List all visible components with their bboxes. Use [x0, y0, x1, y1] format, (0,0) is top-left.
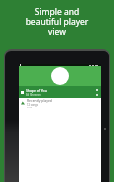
button[interactable]: More options [96, 89, 98, 96]
staticText: Simple and beautiful player view [0, 6, 114, 37]
staticText: 2:31 [27, 107, 33, 108]
staticText: Shape of You [26, 88, 47, 93]
button[interactable]: Shape of You [19, 86, 101, 98]
staticText: Ed Sheeran [26, 93, 41, 97]
button[interactable]: Recently played [19, 98, 101, 108]
staticText: Recently played [27, 98, 52, 103]
staticText: 12 songs [27, 103, 38, 107]
